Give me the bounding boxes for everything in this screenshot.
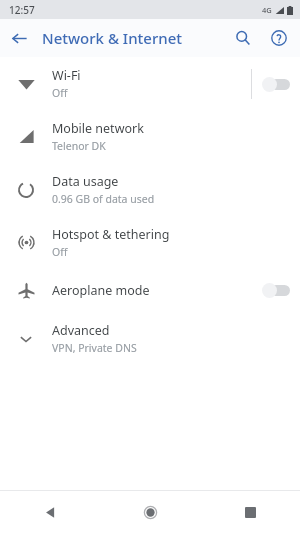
staticText: VPN, Private DNS (52, 341, 137, 355)
staticText: 0.96 GB of data used (52, 192, 155, 206)
staticText: Data usage (52, 173, 119, 190)
button[interactable]: Recent apps (200, 491, 300, 533)
button[interactable]: Mobile network (0, 110, 300, 163)
staticText: Network & Internet (42, 28, 183, 48)
staticText: Mobile network (52, 120, 144, 137)
staticText: Hotspot & tethering (52, 226, 170, 243)
staticText: 4G (262, 5, 272, 15)
button[interactable]: Data usage (0, 163, 300, 216)
button[interactable]: Back (0, 19, 38, 57)
button[interactable]: Search (225, 20, 261, 56)
button[interactable]: Back (0, 491, 100, 533)
staticText: Telenor DK (52, 139, 106, 153)
button[interactable]: Aeroplane mode toggle (252, 269, 300, 312)
staticText: Wi-Fi (52, 67, 81, 84)
staticText: Off (52, 245, 68, 259)
button[interactable]: Help (261, 20, 297, 56)
button[interactable]: Hotspot & tethering (0, 216, 300, 269)
staticText: Advanced (52, 322, 110, 339)
button[interactable]: Home (100, 491, 200, 533)
button[interactable]: Wi-Fi toggle (252, 62, 300, 106)
staticText: Off (52, 86, 68, 100)
staticText: 12:57 (9, 3, 35, 17)
button[interactable]: Wi-Fi (0, 57, 300, 110)
button[interactable]: Advanced (0, 312, 300, 365)
button[interactable]: Aeroplane mode (0, 269, 300, 312)
staticText: Aeroplane mode (52, 282, 150, 299)
